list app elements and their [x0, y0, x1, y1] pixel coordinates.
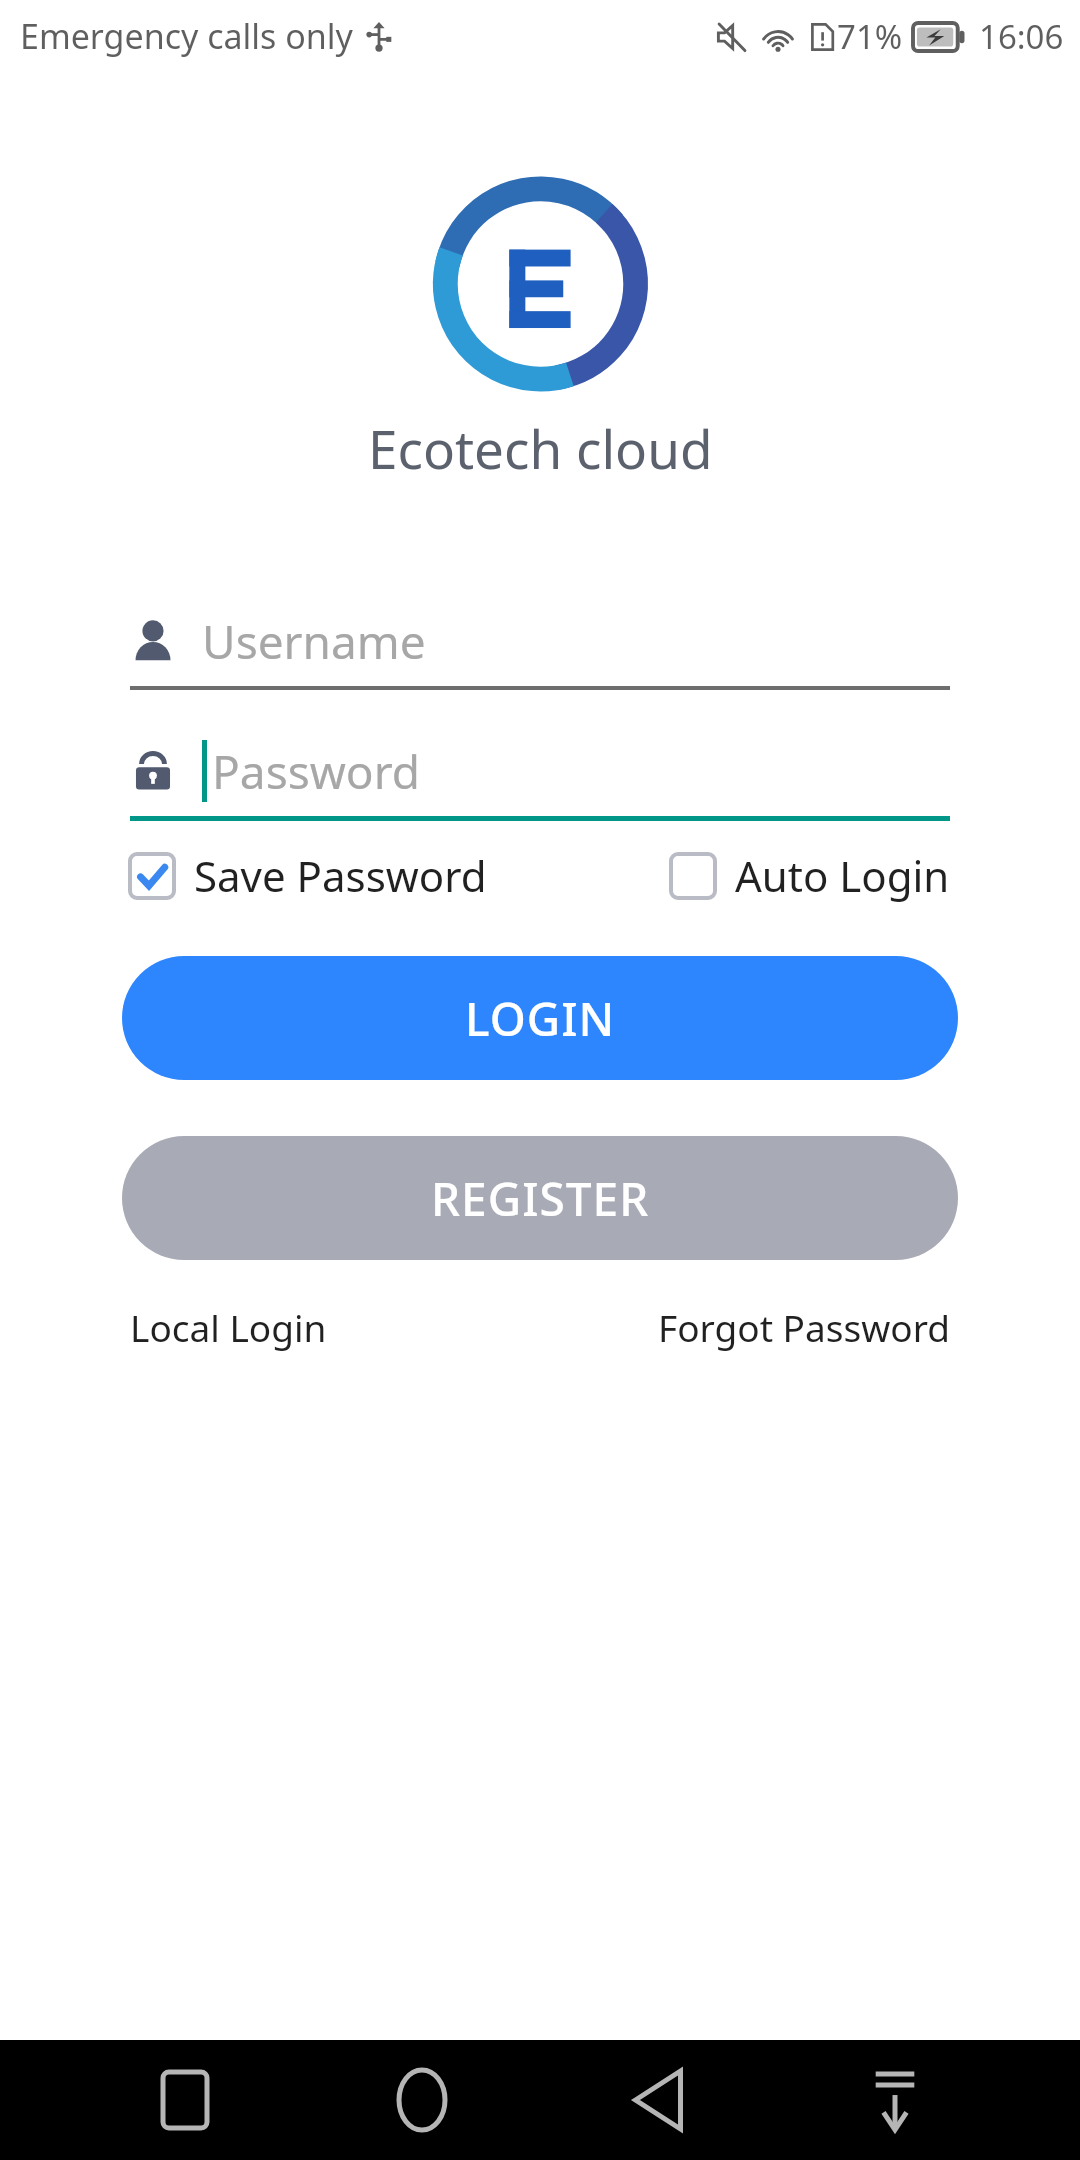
staticText: Auto Login — [735, 847, 950, 904]
button[interactable]: Auto Login — [671, 847, 950, 904]
button[interactable]: Password — [130, 732, 950, 821]
staticText: 71% — [837, 14, 903, 59]
button[interactable]: Forgot Password — [658, 1302, 950, 1352]
button[interactable]: Local Login — [130, 1302, 658, 1352]
button[interactable]: Hide keyboard — [850, 2055, 940, 2145]
button[interactable]: Back — [613, 2055, 703, 2145]
staticText: REGISTER — [431, 1167, 650, 1230]
button[interactable]: Username — [130, 602, 950, 690]
button[interactable]: REGISTER — [122, 1136, 958, 1260]
staticText: Password — [212, 740, 421, 803]
staticText: Username — [202, 610, 426, 673]
button[interactable]: Recent apps — [140, 2055, 230, 2145]
staticText: Local Login — [130, 1302, 327, 1352]
staticText: Save Password — [194, 847, 487, 904]
button[interactable]: LOGIN — [122, 956, 958, 1080]
staticText: 16:06 — [979, 14, 1064, 59]
staticText: Ecotech cloud — [368, 412, 713, 484]
staticText: Forgot Password — [658, 1302, 950, 1352]
staticText: Emergency calls only — [20, 13, 353, 59]
button[interactable]: Home — [377, 2055, 467, 2145]
staticText: LOGIN — [465, 987, 616, 1050]
button[interactable]: Save Password — [130, 847, 671, 904]
